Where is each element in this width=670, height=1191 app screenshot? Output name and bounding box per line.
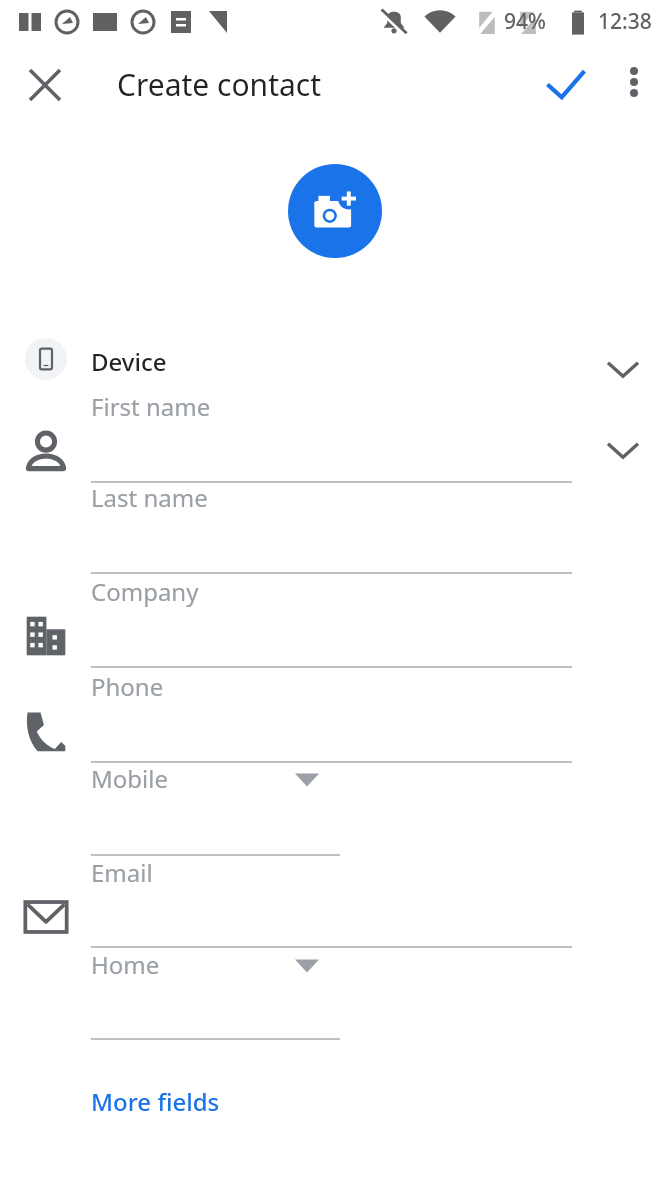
button[interactable]: More fields [82,1076,252,1126]
staticText: Home [91,948,160,981]
staticText: Last name [91,481,208,514]
staticText: More fields [91,1085,220,1118]
staticText: 94% [504,7,546,36]
button[interactable]: Home type selector [91,944,340,1047]
staticText: 12:38 [598,7,652,36]
button[interactable]: Device [0,322,670,396]
staticText: Create contact [117,64,322,105]
button[interactable]: Last name [91,477,572,581]
staticText: Email [91,856,153,889]
staticText: Device [91,345,167,378]
button[interactable]: Expand name fields [596,423,650,477]
staticText: Company [91,575,199,608]
button[interactable]: Company [91,571,572,675]
button[interactable]: Save contact [533,52,599,118]
button[interactable]: More options [604,52,664,112]
button[interactable]: Mobile type selector [91,758,340,863]
staticText: First name [91,390,211,423]
button[interactable]: First name [91,386,572,490]
button[interactable]: Close [12,52,78,118]
staticText: Mobile [91,762,168,795]
button[interactable]: Add contact photo [288,164,382,258]
button[interactable]: Email [91,852,572,955]
button[interactable]: Phone [91,666,572,770]
staticText: Phone [91,670,164,703]
